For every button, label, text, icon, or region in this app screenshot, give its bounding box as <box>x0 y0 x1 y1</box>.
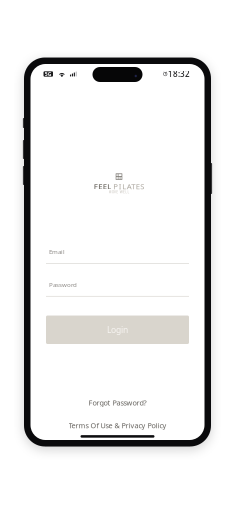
staticText: MOVE WELL <box>108 190 129 194</box>
staticText: FEEL <box>94 181 111 191</box>
staticText: Forgot Password? <box>88 398 146 407</box>
staticText: 5G <box>45 71 52 77</box>
staticText: PILATES <box>113 181 144 191</box>
staticText: Login <box>107 324 128 335</box>
button[interactable]: Terms Of Use & Privacy Policy <box>46 421 189 430</box>
staticText: Email <box>49 248 65 256</box>
staticText: 18:32 <box>168 69 190 79</box>
staticText: Terms Of Use & Privacy Policy <box>68 421 166 430</box>
button[interactable]: Forgot Password? <box>46 398 189 407</box>
staticText: Password <box>49 280 77 289</box>
